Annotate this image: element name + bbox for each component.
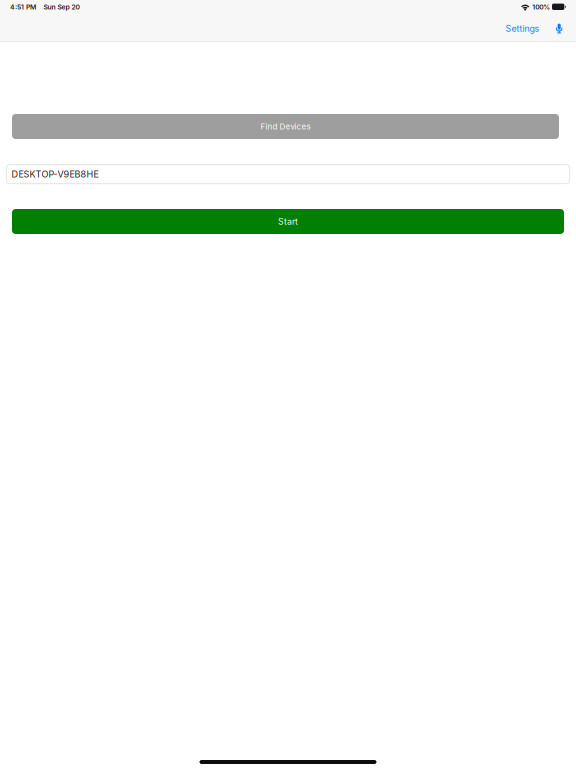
button[interactable]: Settings (500, 17, 546, 38)
staticText: DESKTOP-V9EB8HE (11, 169, 98, 180)
button[interactable]: Start (12, 209, 564, 234)
staticText: Sun Sep 20 (43, 3, 79, 11)
staticText: Settings (506, 23, 540, 34)
button[interactable]: Voice input (550, 18, 568, 37)
staticText: Start (278, 216, 298, 227)
staticText: 4:51 PM (10, 3, 36, 11)
staticText: Find Devices (260, 122, 310, 131)
staticText: 100% (532, 3, 550, 11)
button[interactable]: Find Devices (12, 114, 559, 139)
